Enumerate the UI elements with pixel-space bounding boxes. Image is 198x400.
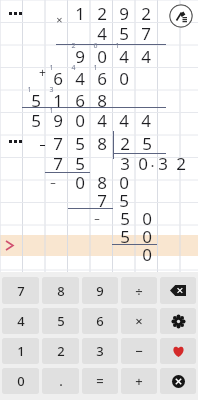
staticText: 4 <box>119 109 129 132</box>
staticText: 4 <box>97 109 107 132</box>
staticText: 0 <box>75 171 85 194</box>
staticText: 1 <box>49 63 54 73</box>
staticText: 5 <box>31 89 41 112</box>
staticText: 0 <box>75 109 85 132</box>
staticText: 1 <box>75 2 85 25</box>
staticText: 1 <box>53 89 63 112</box>
staticText: 8 <box>97 132 107 155</box>
staticText: 1 <box>27 85 32 95</box>
button[interactable]: Favorite <box>160 338 196 364</box>
button[interactable]: 3 <box>82 338 118 364</box>
staticText: – <box>39 136 46 150</box>
staticText: 4 <box>141 109 151 132</box>
staticText: 9 <box>119 2 129 25</box>
button[interactable]: 1 <box>2 338 39 364</box>
staticText: 5 <box>120 225 130 248</box>
staticText: 4 <box>71 63 76 73</box>
staticText: 5 <box>75 132 85 155</box>
staticText: 4 <box>141 45 151 68</box>
staticText: 2 <box>176 152 186 175</box>
staticText: . <box>150 151 155 171</box>
staticText: 0 <box>142 243 152 266</box>
button[interactable]: 2 <box>42 338 79 364</box>
staticText: 4 <box>17 312 25 330</box>
staticText: × <box>56 12 63 26</box>
button[interactable]: 8 <box>42 277 79 304</box>
button[interactable]: Settings <box>160 308 196 334</box>
staticText: . <box>59 372 63 390</box>
staticText: 7 <box>97 189 107 212</box>
button[interactable]: Clear all <box>169 4 193 28</box>
staticText: 6 <box>53 67 63 90</box>
button[interactable]: + <box>121 368 157 394</box>
staticText: 3 <box>96 342 104 360</box>
staticText: 0 <box>142 225 152 248</box>
button[interactable]: = <box>82 368 118 394</box>
staticText: 0 <box>142 207 152 230</box>
staticText: 5 <box>57 312 65 330</box>
staticText: 8 <box>97 171 107 194</box>
staticText: 3 <box>120 152 130 175</box>
staticText: 4 <box>119 45 129 68</box>
button[interactable]: × <box>121 308 157 334</box>
staticText: 1 <box>17 342 25 360</box>
button[interactable]: − <box>121 338 157 364</box>
staticText: + <box>39 64 46 78</box>
staticText: 3 <box>158 152 168 175</box>
staticText: 0 <box>119 171 129 194</box>
staticText: 0 <box>138 152 148 175</box>
staticText: – <box>94 210 100 224</box>
staticText: 1 <box>115 41 120 51</box>
staticText: 5 <box>119 189 129 212</box>
staticText: 6 <box>96 312 104 330</box>
staticText: 0 <box>97 45 107 68</box>
staticText: 7 <box>53 152 63 175</box>
staticText: − <box>135 342 143 360</box>
staticText: 2 <box>57 342 65 360</box>
staticText: 2 <box>141 2 151 25</box>
staticText: 2 <box>97 2 107 25</box>
button[interactable]: 9 <box>82 277 118 304</box>
button[interactable]: . <box>42 368 79 394</box>
staticText: 5 <box>119 22 129 45</box>
staticText: = <box>96 372 104 390</box>
staticText: 0 <box>119 67 129 90</box>
staticText: 2 <box>71 41 76 51</box>
staticText: ÷ <box>135 282 143 300</box>
staticText: × <box>135 312 143 330</box>
staticText: 1 <box>93 63 98 73</box>
staticText: 5 <box>75 152 85 175</box>
staticText: + <box>135 372 143 390</box>
staticText: 6 <box>93 41 98 51</box>
staticText: – <box>50 174 56 188</box>
button[interactable]: 5 <box>42 308 79 334</box>
staticText: 7 <box>141 22 151 45</box>
button[interactable]: 4 <box>2 308 39 334</box>
button[interactable]: 6 <box>82 308 118 334</box>
staticText: 6 <box>97 67 107 90</box>
staticText: 3 <box>49 85 54 95</box>
staticText: 5 <box>120 207 130 230</box>
button[interactable]: Backspace <box>160 277 196 304</box>
staticText: 2 <box>120 132 130 155</box>
button[interactable]: 0 <box>2 368 39 394</box>
staticText: 5 <box>142 132 152 155</box>
button[interactable]: 7 <box>2 277 39 304</box>
staticText: 1 <box>49 106 54 116</box>
button[interactable]: ÷ <box>121 277 157 304</box>
staticText: 7 <box>17 282 25 300</box>
staticText: 5 <box>31 109 41 132</box>
staticText: 7 <box>53 132 63 155</box>
staticText: 9 <box>53 109 63 132</box>
staticText: 4 <box>97 22 107 45</box>
button[interactable]: Close <box>160 368 196 394</box>
staticText: 8 <box>97 89 107 112</box>
staticText: 4 <box>75 67 85 90</box>
staticText: 9 <box>75 45 85 68</box>
staticText: 0 <box>17 372 25 390</box>
staticText: 6 <box>75 89 85 112</box>
staticText: 8 <box>57 282 65 300</box>
staticText: 9 <box>96 282 104 300</box>
